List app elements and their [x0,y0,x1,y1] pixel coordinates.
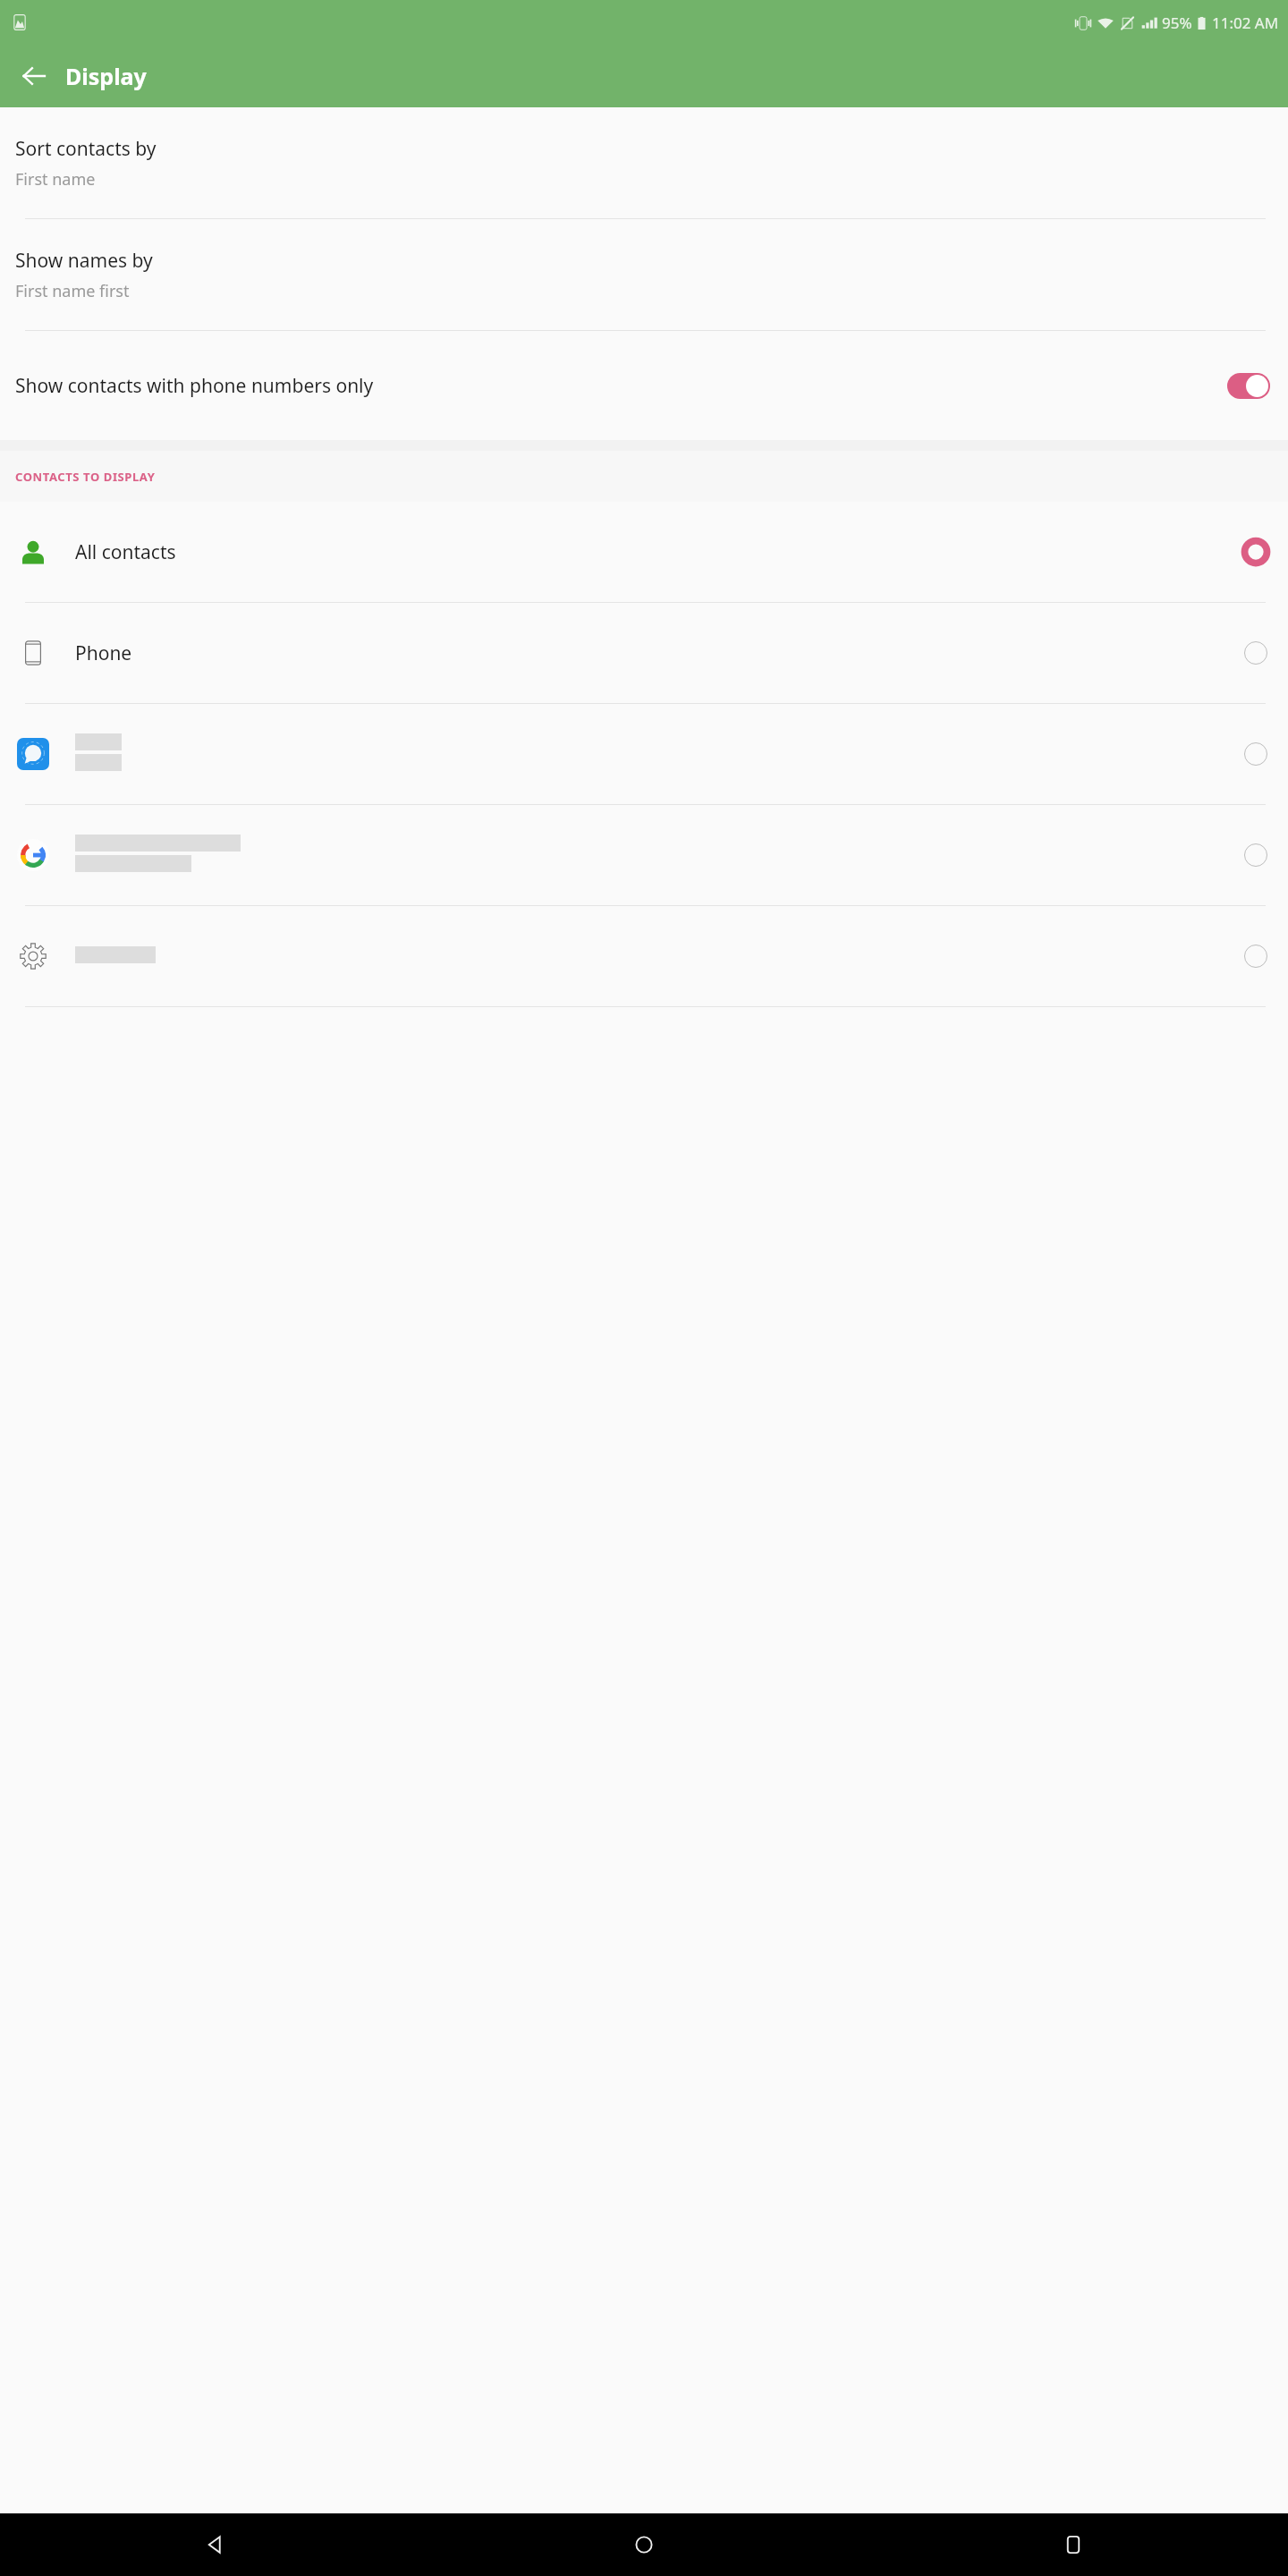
button[interactable]: Back [13,55,55,97]
staticText: Show names by [15,248,153,274]
button[interactable]: Recent apps [859,2513,1288,2576]
button[interactable]: Back [0,2513,429,2576]
button[interactable]: Phone [0,603,1288,703]
button[interactable] [0,906,1288,1006]
staticText: Display [65,61,147,91]
staticText: First name [15,168,96,191]
staticText: CONTACTS TO DISPLAY [15,469,156,485]
staticText: First name first [15,280,130,302]
button[interactable] [0,704,1288,804]
staticText: 95% [1162,13,1192,33]
staticText: All contacts [75,539,1243,565]
button[interactable]: Sort contacts by [0,107,1288,218]
staticText: Sort contacts by [15,136,157,162]
button[interactable]: Show names by [0,219,1288,330]
staticText: Show contacts with phone numbers only [15,373,1227,399]
staticText: Phone [75,640,1243,666]
button[interactable]: Show contacts with phone numbers only [0,331,1288,440]
button[interactable] [0,805,1288,905]
button[interactable]: All contacts [0,502,1288,602]
button[interactable]: Home [429,2513,859,2576]
staticText: 11:02 AM [1212,13,1279,33]
